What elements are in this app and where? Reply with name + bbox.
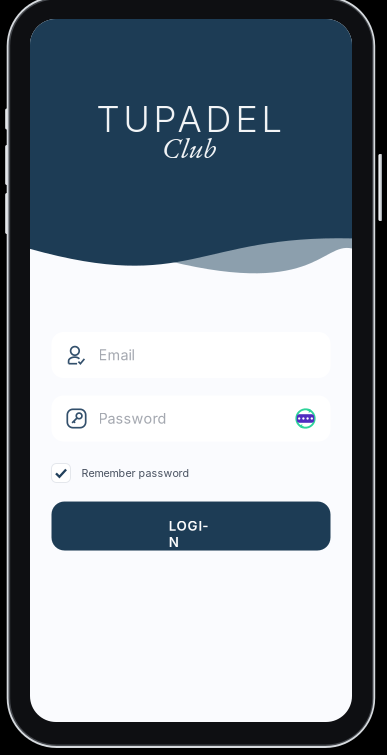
button[interactable]: Email	[51, 332, 330, 378]
staticText: Remember password	[81, 466, 189, 479]
button[interactable]: LOGIN	[51, 501, 330, 550]
button[interactable]: Remember password	[51, 463, 330, 482]
staticText: TUPADEL	[97, 97, 281, 141]
staticText: Password	[98, 410, 166, 427]
staticText: Club	[162, 129, 216, 167]
staticText: Email	[98, 346, 134, 364]
button[interactable]: Password	[51, 395, 330, 441]
staticText: LOGIN	[169, 518, 213, 534]
